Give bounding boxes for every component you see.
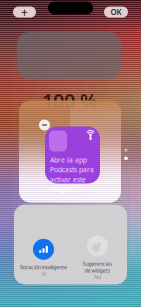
staticText: Rotación inteligente bbox=[20, 264, 67, 271]
staticText: Abre la app bbox=[50, 155, 87, 164]
staticText: + bbox=[21, 4, 28, 20]
button[interactable]: Quitar widget bbox=[39, 119, 50, 130]
staticText: activar este widget bbox=[50, 175, 86, 193]
staticText: Sugerencias bbox=[82, 260, 112, 267]
staticText: Podcasts para bbox=[50, 165, 94, 174]
button[interactable]: Sugerencias bbox=[72, 235, 122, 280]
staticText: de widgets bbox=[84, 267, 110, 274]
staticText: Sí bbox=[41, 270, 45, 277]
staticText: OK bbox=[110, 7, 121, 17]
button[interactable]: OK bbox=[104, 6, 128, 17]
staticText: 100 % bbox=[42, 87, 98, 114]
button[interactable]: Añadir widget bbox=[13, 6, 36, 17]
staticText: No bbox=[94, 273, 101, 281]
button[interactable]: Rotación inteligente bbox=[18, 239, 68, 277]
